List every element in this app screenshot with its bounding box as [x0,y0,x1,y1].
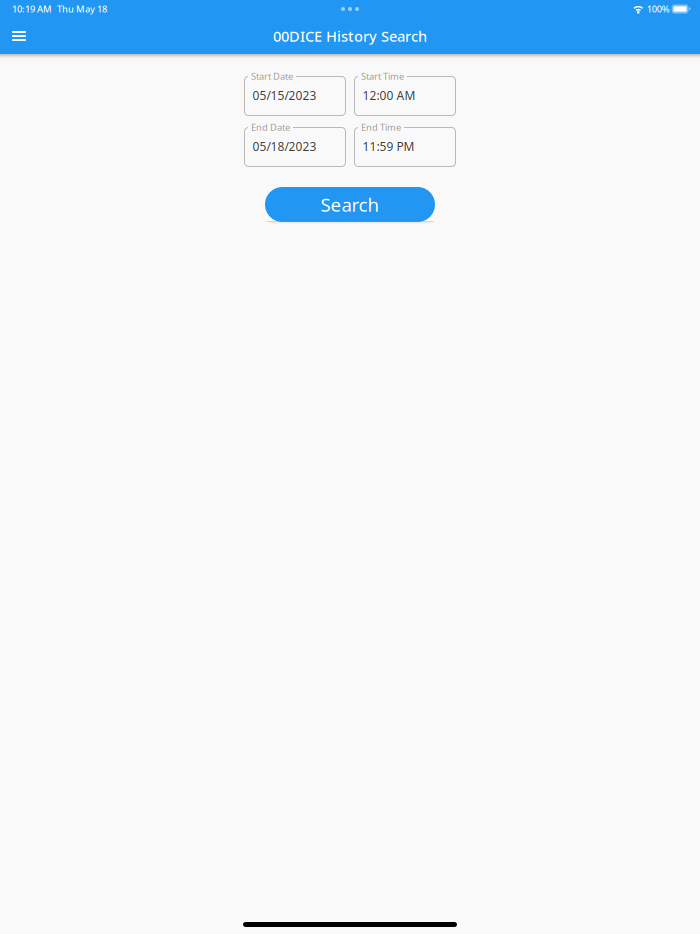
staticText: 00DICE History Search [273,26,427,46]
button[interactable]: 12:00 AM [354,71,455,115]
staticText: 10:19 AM [12,3,52,15]
button[interactable]: Search [265,187,435,222]
staticText: Start Date [251,70,293,82]
staticText: 11:59 PM [362,138,414,154]
staticText: 100% [647,3,670,15]
staticText: End Date [251,121,290,133]
button[interactable]: 11:59 PM [354,122,455,166]
button[interactable]: Menu [0,18,38,54]
button[interactable]: 05/18/2023 [244,122,345,166]
staticText: 12:00 AM [362,87,415,103]
button[interactable]: 05/15/2023 [244,71,345,115]
staticText: Thu May 18 [57,3,107,15]
staticText: 05/18/2023 [252,138,316,154]
staticText: 05/15/2023 [252,87,316,103]
staticText: Search [320,192,379,217]
staticText: End Time [361,121,401,133]
staticText: Start Time [361,70,404,82]
